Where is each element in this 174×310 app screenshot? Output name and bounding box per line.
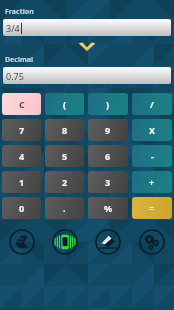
button[interactable]: . [45, 197, 84, 219]
button[interactable]: + [132, 171, 172, 193]
staticText: 7 [19, 124, 25, 136]
button[interactable]: Erase [86, 225, 130, 259]
button[interactable]: 6 [88, 145, 128, 167]
staticText: ) [106, 98, 110, 110]
staticText: 5 [62, 150, 68, 162]
button[interactable]: / [132, 93, 172, 115]
button[interactable]: 7 [2, 119, 41, 141]
button[interactable]: ) [88, 93, 128, 115]
staticText: Decimal [5, 55, 34, 65]
staticText: 0 [19, 202, 25, 214]
button[interactable]: 5 [45, 145, 84, 167]
button[interactable]: 0.75 [3, 67, 171, 84]
staticText: % [104, 202, 113, 214]
staticText: . [63, 202, 66, 214]
button[interactable]: Vibrate [43, 225, 86, 259]
button[interactable]: 8 [45, 119, 84, 141]
button[interactable]: 1 [2, 171, 41, 193]
staticText: = [149, 202, 155, 214]
button[interactable]: 0 [2, 197, 41, 219]
staticText: X [149, 124, 156, 136]
button[interactable]: Settings [130, 225, 174, 259]
staticText: 4 [19, 150, 25, 162]
staticText: + [149, 176, 155, 188]
staticText: 8 [62, 124, 68, 136]
button[interactable]: 3/4 [3, 19, 171, 36]
staticText: 3 [105, 176, 111, 188]
button[interactable]: C [2, 93, 41, 115]
button[interactable]: 2 [45, 171, 84, 193]
button[interactable]: 4 [2, 145, 41, 167]
staticText: / [150, 98, 154, 110]
staticText: ( [63, 98, 67, 110]
staticText: C [19, 98, 25, 110]
staticText: 9 [105, 124, 111, 136]
staticText: 2 [62, 176, 68, 188]
staticText: 0.75 [6, 70, 24, 82]
button[interactable]: X [132, 119, 172, 141]
button[interactable]: 3 [88, 171, 128, 193]
button[interactable]: = [132, 197, 172, 219]
button[interactable]: - [132, 145, 172, 167]
button[interactable]: Copy [0, 225, 43, 259]
staticText: 6 [105, 150, 111, 162]
button[interactable]: % [88, 197, 128, 219]
staticText: Fraction [5, 7, 34, 17]
button[interactable]: 9 [88, 119, 128, 141]
button[interactable]: ( [45, 93, 84, 115]
staticText: 3/4 [6, 22, 20, 34]
staticText: - [151, 150, 154, 162]
staticText: 1 [19, 176, 25, 188]
